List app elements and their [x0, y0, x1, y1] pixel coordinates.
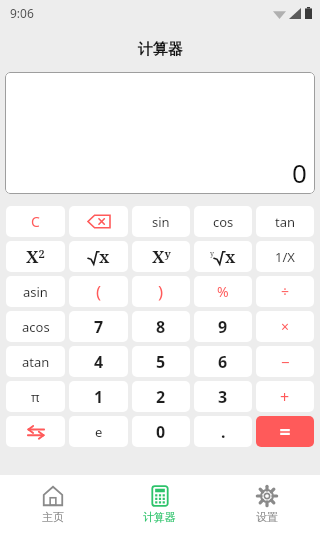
- button[interactable]: 2: [132, 381, 190, 412]
- staticText: atan: [22, 353, 50, 371]
- other: Equals: [277, 427, 293, 437]
- button[interactable]: 5: [132, 346, 190, 377]
- staticText: +: [280, 386, 290, 408]
- staticText: 9: [218, 316, 228, 338]
- button[interactable]: x: [69, 241, 128, 272]
- button[interactable]: Xy: [132, 241, 190, 272]
- button[interactable]: 计算器: [106, 475, 213, 533]
- staticText: 9:06: [10, 5, 34, 21]
- staticText: .: [221, 421, 226, 443]
- button[interactable]: Swap: [6, 416, 65, 447]
- staticText: 设置: [256, 510, 278, 524]
- staticText: 8: [156, 316, 166, 338]
- staticText: Xy: [152, 245, 171, 268]
- button[interactable]: −: [256, 346, 314, 377]
- button[interactable]: ×: [256, 311, 314, 342]
- button[interactable]: 3: [194, 381, 252, 412]
- staticText: 0: [156, 421, 166, 443]
- staticText: x: [99, 246, 110, 268]
- staticText: π: [31, 388, 40, 406]
- staticText: 5: [156, 351, 166, 373]
- button[interactable]: 1: [69, 381, 128, 412]
- button[interactable]: C: [6, 206, 65, 237]
- staticText: acos: [22, 318, 50, 336]
- button[interactable]: .: [194, 416, 252, 447]
- staticText: 1: [94, 386, 104, 408]
- button[interactable]: asin: [6, 276, 65, 307]
- staticText: sin: [152, 213, 170, 231]
- staticText: %: [217, 282, 229, 301]
- staticText: e: [95, 423, 103, 441]
- staticText: cos: [213, 213, 234, 231]
- staticText: ÷: [281, 282, 290, 301]
- staticText: 计算器: [138, 40, 183, 59]
- button[interactable]: e: [69, 416, 128, 447]
- button[interactable]: sin: [132, 206, 190, 237]
- other: Swap: [27, 424, 45, 440]
- button[interactable]: 设置: [213, 475, 320, 533]
- button[interactable]: π: [6, 381, 65, 412]
- button[interactable]: acos: [6, 311, 65, 342]
- button[interactable]: X2: [6, 241, 65, 272]
- button[interactable]: ): [132, 276, 190, 307]
- staticText: C: [31, 212, 40, 231]
- staticText: tan: [275, 213, 296, 231]
- button[interactable]: (: [69, 276, 128, 307]
- staticText: 计算器: [143, 510, 176, 524]
- staticText: 6: [218, 351, 228, 373]
- button[interactable]: ÷: [256, 276, 314, 307]
- staticText: 主页: [42, 510, 64, 524]
- staticText: 1/X: [275, 248, 295, 266]
- button[interactable]: 1/X: [256, 241, 314, 272]
- button[interactable]: 9: [194, 311, 252, 342]
- button[interactable]: 4: [69, 346, 128, 377]
- staticText: X2: [26, 245, 45, 268]
- button[interactable]: 0: [132, 416, 190, 447]
- other: Backspace: [88, 214, 110, 229]
- button[interactable]: 7: [69, 311, 128, 342]
- staticText: 2: [156, 386, 166, 408]
- button[interactable]: 主页: [0, 475, 106, 533]
- staticText: x: [225, 246, 236, 268]
- staticText: (: [96, 280, 102, 303]
- staticText: 0: [292, 155, 307, 190]
- staticText: 4: [94, 351, 104, 373]
- staticText: ×: [281, 317, 290, 336]
- button[interactable]: Equals: [256, 416, 314, 447]
- staticText: −: [281, 352, 290, 372]
- button[interactable]: 6: [194, 346, 252, 377]
- button[interactable]: atan: [6, 346, 65, 377]
- staticText: ): [158, 280, 164, 303]
- button[interactable]: y: [194, 241, 252, 272]
- button[interactable]: +: [256, 381, 314, 412]
- button[interactable]: tan: [256, 206, 314, 237]
- button[interactable]: 8: [132, 311, 190, 342]
- staticText: y: [210, 249, 214, 259]
- staticText: 7: [94, 316, 104, 338]
- button[interactable]: %: [194, 276, 252, 307]
- staticText: 3: [218, 386, 228, 408]
- staticText: asin: [23, 283, 48, 301]
- button[interactable]: cos: [194, 206, 252, 237]
- button[interactable]: Backspace: [69, 206, 128, 237]
